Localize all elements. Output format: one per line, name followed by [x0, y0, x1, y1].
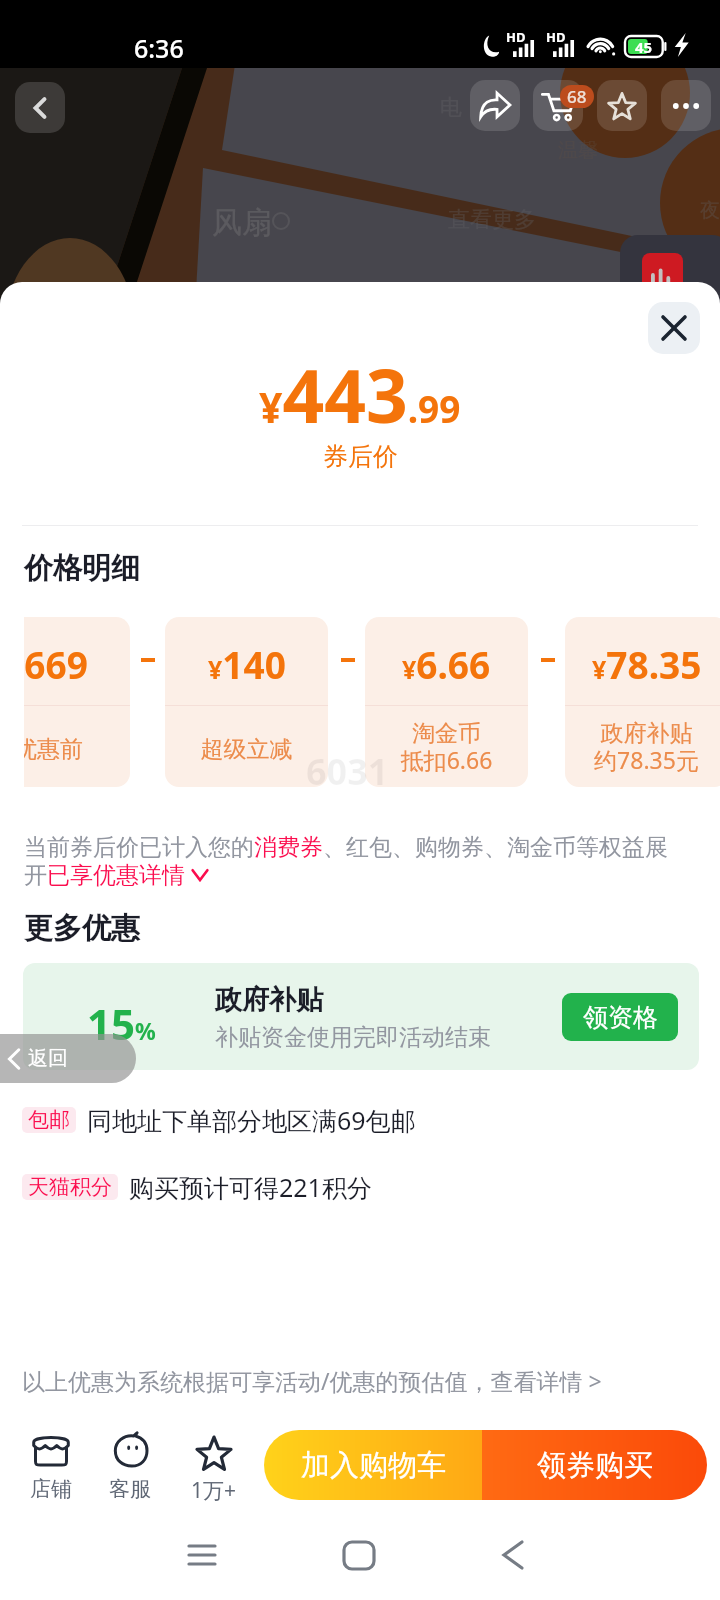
- staticText: 68: [567, 85, 587, 108]
- staticText: 以上优惠为系统根据可享活动/优惠的预估值，查看详情 >: [22, 1365, 602, 1396]
- staticText: 店铺: [30, 1476, 72, 1502]
- staticText: 6:36: [134, 31, 184, 65]
- button[interactable]: ¥6.66: [365, 617, 528, 787]
- button[interactable]: 领券购买: [482, 1430, 707, 1500]
- staticText: 当前券后价已计入您的消费券、红包、购物券、淘金币等权益展: [24, 833, 668, 862]
- staticText: 客服: [109, 1476, 151, 1502]
- button[interactable]: ¥669: [24, 617, 130, 787]
- staticText: 开已享优惠详情: [24, 861, 185, 890]
- button[interactable]: ¥140: [165, 617, 328, 787]
- staticText: 加入购物车: [301, 1447, 446, 1484]
- button[interactable]: 15%: [23, 963, 699, 1070]
- staticText: 政府补贴 约78.35元: [565, 719, 720, 776]
- staticText: 包邮: [28, 1107, 70, 1133]
- staticText: 优惠前: [24, 735, 130, 764]
- button[interactable]: 店铺: [13, 1406, 89, 1510]
- button[interactable]: Chart: [620, 235, 720, 355]
- button[interactable]: 加入购物车: [264, 1430, 482, 1500]
- button[interactable]: ¥78.35: [565, 617, 720, 787]
- staticText: ¥78.35: [592, 639, 702, 689]
- staticText: HD: [506, 28, 526, 46]
- staticText: 15%: [87, 995, 156, 1052]
- staticText: 价格明细: [24, 550, 140, 587]
- button[interactable]: 返回: [0, 1034, 136, 1083]
- staticText: 45: [635, 37, 653, 57]
- staticText: 政府补贴: [215, 983, 323, 1017]
- button[interactable]: Back: [15, 82, 65, 133]
- staticText: ¥6.66: [402, 639, 491, 689]
- button[interactable]: 领资格: [562, 993, 678, 1041]
- staticText: ¥443.99: [259, 345, 461, 425]
- button[interactable]: Cart: [533, 80, 583, 131]
- staticText: ¥140: [208, 639, 286, 689]
- staticText: 1万+: [191, 1476, 237, 1505]
- button[interactable]: Share: [470, 80, 520, 131]
- button[interactable]: 1万+: [176, 1406, 252, 1510]
- button[interactable]: Favourite: [597, 80, 647, 131]
- staticText: 天猫积分: [28, 1174, 112, 1200]
- staticText: ¥669: [24, 639, 88, 689]
- staticText: HD: [546, 28, 566, 46]
- staticText: 直看更多: [448, 206, 536, 234]
- staticText: 领资格: [583, 1002, 658, 1033]
- staticText: 领券购买: [537, 1447, 653, 1484]
- button[interactable]: More: [661, 80, 711, 131]
- staticText: 购买预计可得221积分: [129, 1170, 372, 1204]
- staticText: 电: [440, 94, 462, 122]
- staticText: 同地址下单部分地区满69包邮: [87, 1103, 416, 1137]
- staticText: 更多优惠: [24, 910, 140, 947]
- staticText: 返回: [28, 1046, 68, 1071]
- staticText: 券后价: [323, 441, 398, 472]
- staticText: 温馨: [558, 138, 598, 163]
- staticText: 超级立减: [165, 735, 328, 764]
- button[interactable]: 客服: [92, 1406, 168, 1510]
- staticText: 淘金币 抵扣6.66: [365, 719, 528, 776]
- staticText: 风扇: [212, 204, 272, 242]
- button[interactable]: Close: [648, 302, 700, 354]
- staticText: 6031: [306, 747, 389, 787]
- staticText: 夜: [700, 198, 720, 223]
- staticText: 补贴资金使用完即活动结束: [215, 1023, 491, 1052]
